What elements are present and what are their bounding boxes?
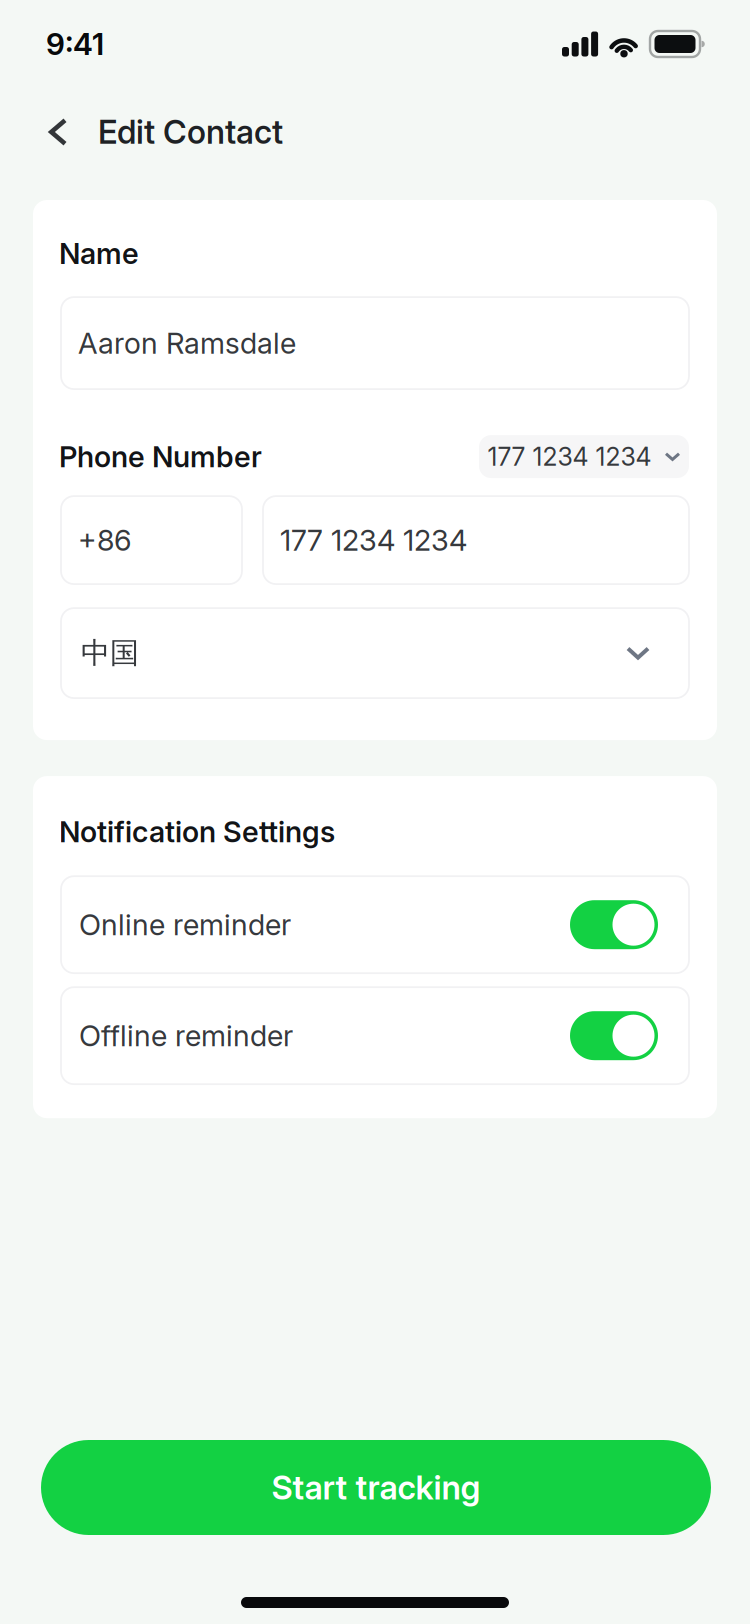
button[interactable]: Start tracking [41, 1440, 711, 1535]
button[interactable]: +86 [61, 496, 242, 584]
button[interactable]: 177 1234 1234 [479, 435, 689, 478]
staticText: Start tracking [271, 1467, 480, 1507]
staticText: Aaron Ramsdale [78, 325, 296, 361]
staticText: Offline reminder [79, 1018, 293, 1053]
button[interactable]: 177 1234 1234 [263, 496, 689, 584]
staticText: Online reminder [79, 907, 291, 942]
staticText: 177 1234 1234 [487, 441, 651, 472]
button[interactable]: 中国 [61, 608, 689, 698]
button[interactable]: Back [0, 99, 98, 165]
staticText: Edit Contact [98, 112, 283, 152]
button[interactable]: Offline reminder [61, 987, 689, 1084]
button[interactable]: Aaron Ramsdale [61, 297, 689, 389]
staticText: 177 1234 1234 [280, 522, 467, 558]
staticText: Notification Settings [59, 814, 335, 849]
staticText: Name [59, 236, 139, 271]
button[interactable]: Online reminder [61, 876, 689, 973]
staticText: 9:41 [46, 26, 104, 62]
staticText: +86 [78, 522, 132, 558]
staticText: 中国 [81, 635, 139, 671]
staticText: Phone Number [59, 439, 262, 474]
